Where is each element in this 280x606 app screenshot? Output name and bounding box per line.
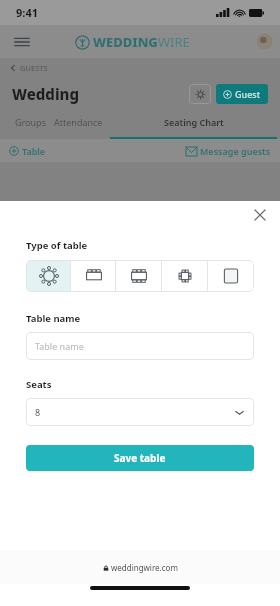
staticText: Groups — [15, 116, 46, 128]
button[interactable]: Save table — [26, 445, 254, 471]
staticText: WIRE — [158, 33, 190, 51]
staticText: WEDDING — [93, 33, 158, 51]
staticText: Guest — [235, 88, 261, 100]
button[interactable]: Groups — [11, 110, 50, 134]
button[interactable]: Seating Chart — [107, 110, 280, 139]
staticText: 8 — [35, 406, 41, 418]
staticText: Attendance — [54, 116, 103, 128]
button[interactable]: Guest — [216, 84, 268, 104]
button[interactable]: Message guests — [186, 145, 271, 157]
staticText: Seating Chart — [164, 116, 224, 128]
button[interactable]: Square table — [162, 260, 208, 292]
button[interactable]: Round table — [26, 260, 71, 292]
staticText: Table name — [26, 312, 81, 325]
staticText: Table — [22, 145, 46, 157]
button[interactable]: Rectangular table, one side — [71, 260, 116, 292]
button[interactable]: Table name field — [26, 332, 254, 360]
staticText: Message guests — [200, 145, 271, 157]
button[interactable]: Menu — [9, 29, 35, 55]
button[interactable]: Attendance — [50, 110, 107, 134]
button[interactable]: Profile — [257, 34, 272, 49]
staticText: Table name — [35, 340, 84, 352]
button[interactable]: Close — [246, 201, 274, 227]
staticText: Seats — [26, 378, 52, 391]
staticText: Wedding — [12, 84, 80, 104]
staticText: Type of table — [26, 239, 88, 252]
button[interactable]: WEDDING — [75, 33, 190, 51]
staticText: 9:41 — [16, 5, 38, 20]
staticText: GUESTS — [20, 63, 48, 73]
button[interactable]: GUESTS — [9, 58, 280, 77]
staticText: Save table — [114, 451, 166, 465]
button[interactable]: Address bar weddingwire.com — [0, 550, 280, 584]
button[interactable]: Seats, 8 — [26, 398, 254, 426]
button[interactable]: Rectangular table, both sides — [116, 260, 162, 292]
button[interactable]: Blank table — [208, 260, 254, 292]
staticText: weddingwire.com — [111, 562, 178, 573]
button[interactable]: Table — [9, 145, 46, 157]
button[interactable]: Settings — [189, 84, 211, 104]
